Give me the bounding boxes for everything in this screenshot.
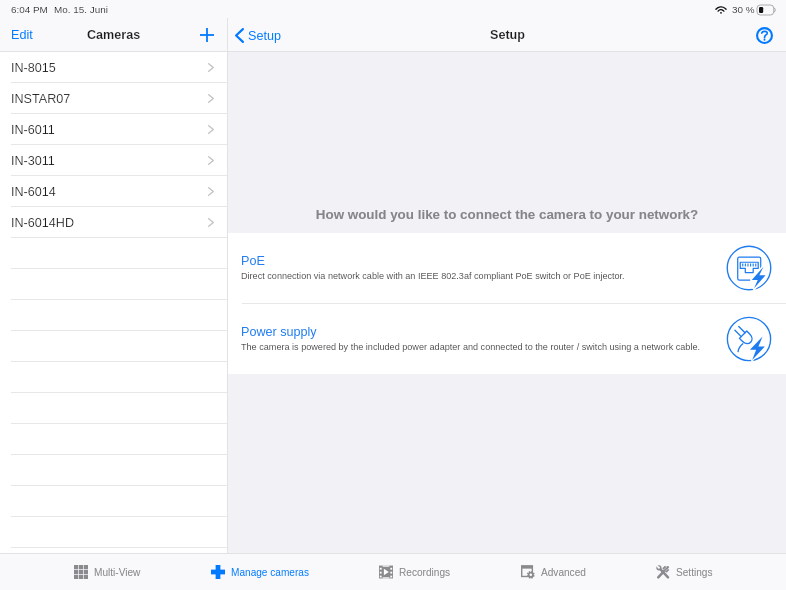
- button[interactable]: Edit: [0, 24, 44, 46]
- button[interactable]: IN-6014HD: [0, 207, 227, 238]
- staticText: 30 %: [732, 4, 755, 15]
- staticText: Mo. 15. Juni: [54, 4, 108, 15]
- staticText: Cameras: [87, 28, 141, 42]
- staticText: IN-8015: [11, 61, 56, 75]
- button[interactable]: Manage cameras: [186, 554, 334, 590]
- button[interactable]: INSTAR07: [0, 83, 227, 114]
- staticText: Settings: [676, 567, 713, 578]
- staticText: Manage cameras: [231, 567, 309, 578]
- button[interactable]: Multi-View: [49, 554, 166, 590]
- staticText: INSTAR07: [11, 92, 71, 106]
- staticText: Setup: [490, 28, 525, 42]
- button[interactable]: IN-3011: [0, 145, 227, 176]
- button[interactable]: Recordings: [354, 554, 476, 590]
- button[interactable]: Help: [747, 23, 786, 48]
- staticText: How would you like to connect the camera…: [228, 207, 786, 222]
- staticText: Direct connection via network cable with…: [241, 271, 625, 281]
- button[interactable]: Power supply: [228, 304, 786, 374]
- staticText: Power supply: [241, 325, 317, 339]
- staticText: PoE: [241, 254, 265, 268]
- staticText: IN-6014HD: [11, 216, 74, 230]
- button[interactable]: IN-6011: [0, 114, 227, 145]
- button[interactable]: IN-8015: [0, 52, 227, 83]
- staticText: Edit: [11, 28, 33, 42]
- button[interactable]: Setup: [228, 24, 291, 47]
- staticText: Multi-View: [94, 567, 141, 578]
- staticText: Advanced: [541, 567, 586, 578]
- button[interactable]: Advanced: [496, 554, 611, 590]
- staticText: IN-6011: [11, 123, 55, 137]
- button[interactable]: Add camera: [191, 24, 227, 46]
- button[interactable]: IN-6014: [0, 176, 227, 207]
- staticText: IN-3011: [11, 154, 55, 168]
- button[interactable]: PoE: [228, 233, 786, 303]
- staticText: 6:04 PM: [11, 4, 48, 15]
- staticText: Setup: [248, 29, 281, 43]
- staticText: The camera is powered by the included po…: [241, 342, 700, 352]
- button[interactable]: Settings: [631, 554, 738, 590]
- staticText: IN-6014: [11, 185, 56, 199]
- staticText: Recordings: [399, 567, 451, 578]
